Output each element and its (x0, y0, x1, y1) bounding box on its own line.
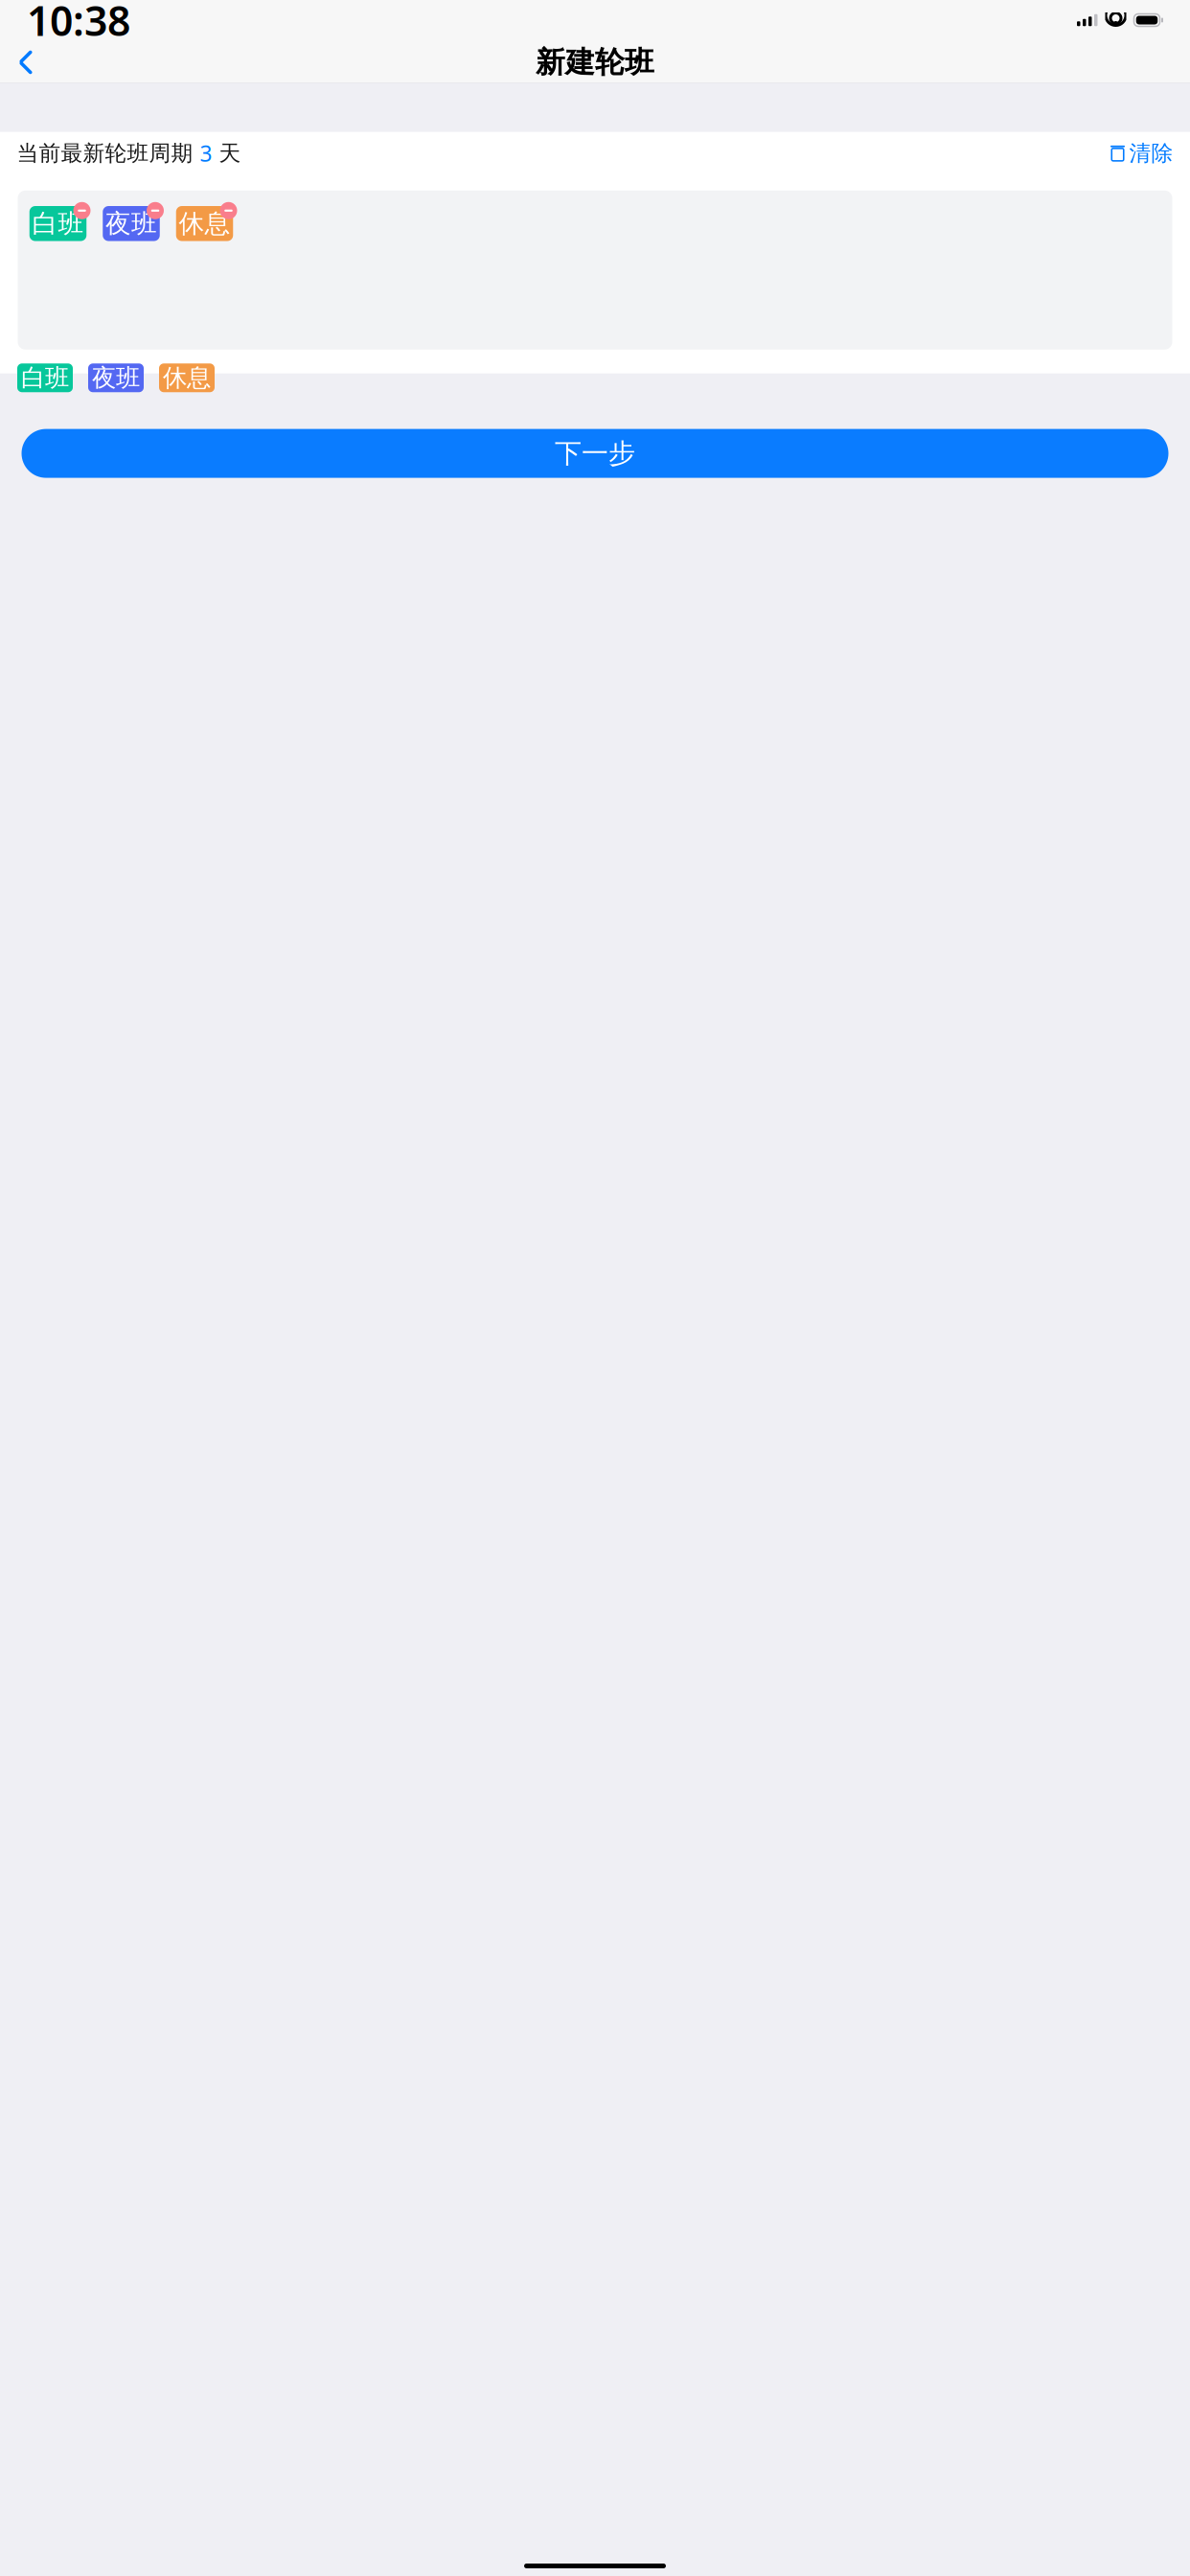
staticText: 夜班 (92, 363, 140, 393)
button[interactable]: 下一步 (22, 429, 1168, 478)
staticText: 3 (200, 139, 212, 168)
staticText: 下一步 (555, 437, 635, 470)
staticText: 休息 (163, 363, 211, 393)
button[interactable]: 清除 (1110, 136, 1173, 170)
staticText: 白班 (32, 208, 84, 239)
staticText: 新建轮班 (536, 44, 654, 80)
staticText: 10:38 (27, 0, 130, 47)
staticText: 当前最新轮班周期 (17, 140, 200, 166)
staticText: 休息 (179, 208, 230, 239)
staticText: 白班 (21, 363, 69, 393)
staticText: 清除 (1129, 140, 1173, 166)
button[interactable]: 夜班 (88, 363, 144, 392)
button[interactable]: 休息 (172, 202, 237, 245)
staticText: 夜班 (105, 208, 157, 239)
button[interactable]: 夜班 (99, 202, 164, 245)
button[interactable]: 休息 (159, 363, 215, 392)
button[interactable]: Back (5, 41, 47, 83)
button[interactable]: 白班 (25, 202, 91, 245)
staticText: 天 (212, 140, 241, 166)
button[interactable]: 白班 (17, 363, 73, 392)
